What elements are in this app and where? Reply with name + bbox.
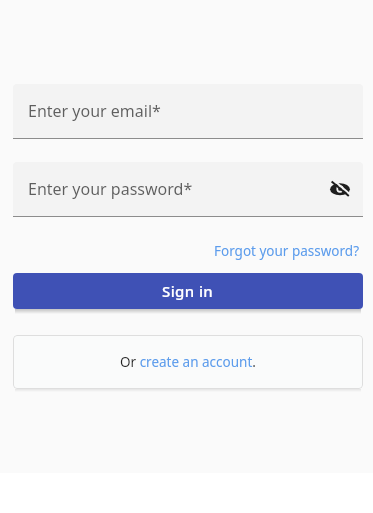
button[interactable]: Forgot your password? bbox=[214, 242, 360, 260]
staticText: Or create an account. bbox=[120, 353, 256, 371]
staticText: Sign in bbox=[162, 281, 214, 301]
button[interactable] bbox=[329, 178, 351, 200]
button[interactable]: Enter your password* bbox=[13, 162, 363, 216]
button[interactable]: Enter your email* bbox=[13, 84, 363, 138]
staticText: Enter your password* bbox=[28, 178, 193, 200]
button[interactable]: Sign in bbox=[13, 273, 363, 309]
staticText: Enter your email* bbox=[28, 100, 161, 122]
button[interactable]: Or create an account. bbox=[13, 335, 363, 389]
